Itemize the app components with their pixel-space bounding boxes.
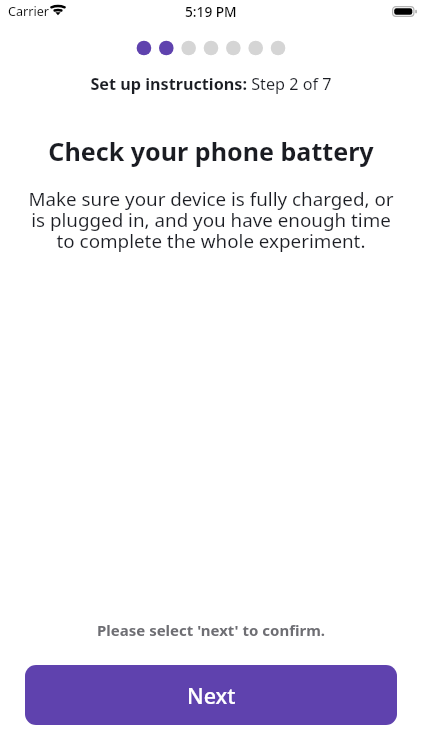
staticText: 5:19 PM (185, 2, 237, 21)
staticText: Make sure your device is fully charged, … (26, 186, 396, 254)
other: Wi-Fi signal (50, 5, 66, 16)
staticText: Please select 'next' to confirm. (0, 620, 422, 640)
staticText: Set up instructions: Step 2 of 7 (0, 73, 422, 95)
staticText: Carrier (8, 3, 49, 20)
staticText: Check your phone battery (0, 134, 422, 168)
other: Battery full (392, 6, 417, 17)
button[interactable]: Next (25, 665, 397, 725)
staticText: Next (187, 681, 236, 710)
